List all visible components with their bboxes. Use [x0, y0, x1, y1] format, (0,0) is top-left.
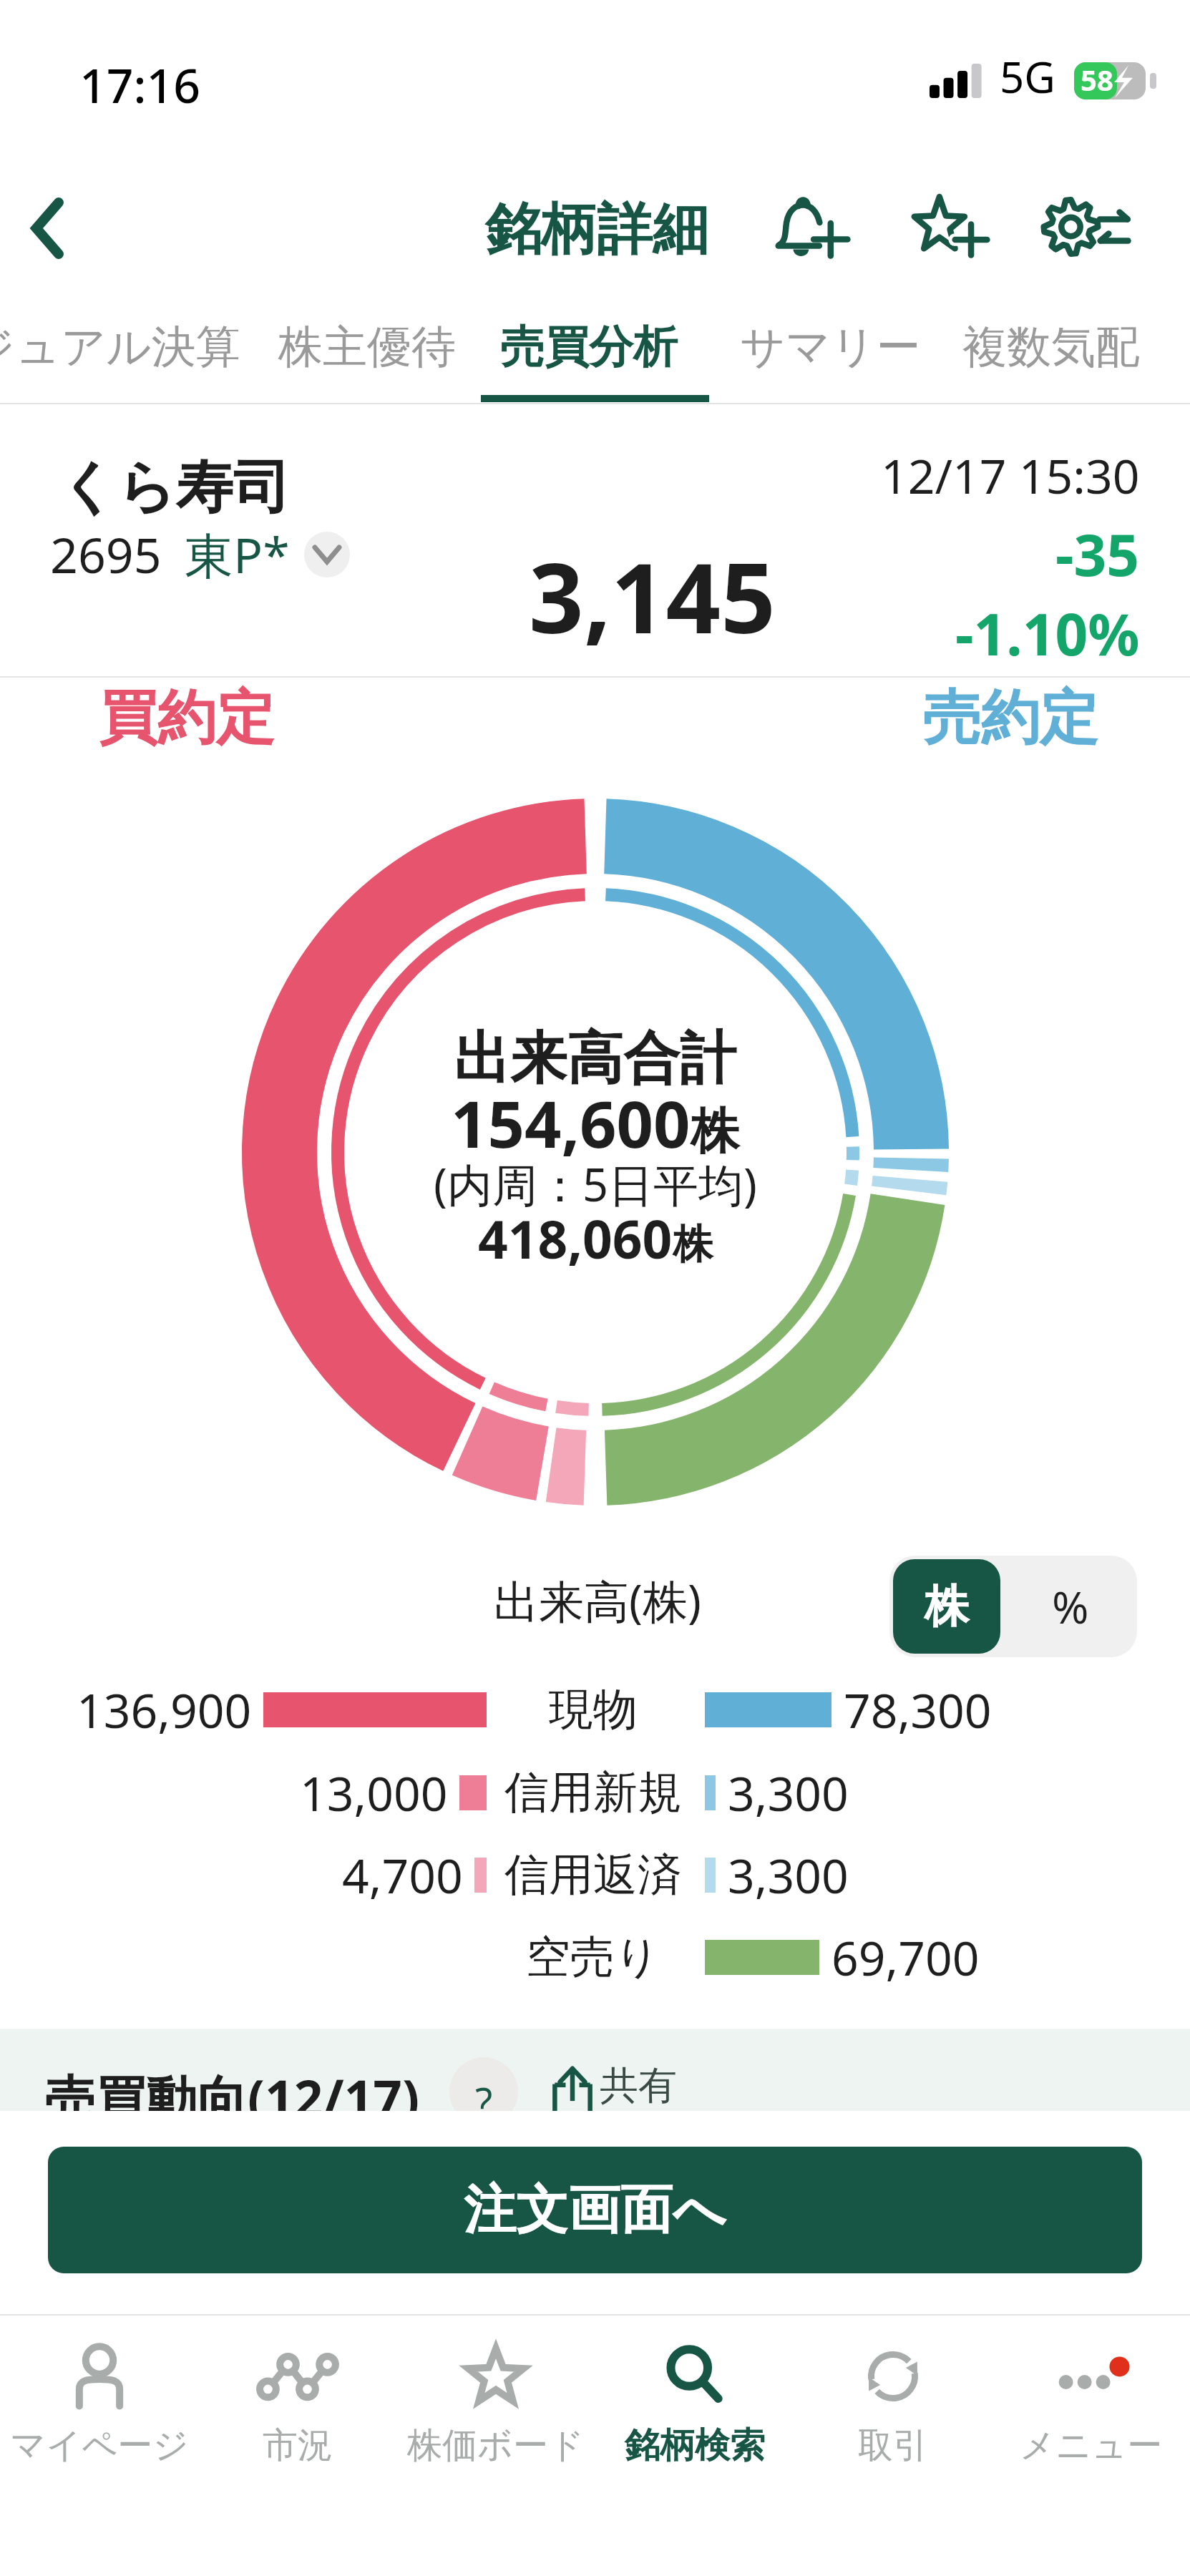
staticText: 東P* — [185, 521, 290, 587]
staticText: -1.10% — [955, 594, 1140, 672]
staticText: 銘柄詳細 — [485, 195, 708, 265]
staticText: 136,900 — [77, 1677, 252, 1742]
button[interactable]: 注文画面へ — [48, 2147, 1142, 2273]
staticText: 17:16 — [79, 52, 200, 117]
staticText: 信用返済 — [504, 1847, 682, 1903]
staticText: マイページ — [10, 2424, 189, 2468]
staticText: 5G — [1000, 47, 1055, 106]
staticText: 空売り — [526, 1929, 660, 1985]
button[interactable]: メニュー — [992, 2320, 1190, 2468]
button[interactable]: マイページ — [0, 2320, 198, 2468]
button[interactable]: 株 — [893, 1559, 1000, 1654]
staticText: 3,300 — [728, 1843, 849, 1907]
button[interactable]: 13,000 — [0, 1751, 1190, 1834]
button[interactable]: Show details — [304, 532, 350, 577]
staticText: 売約定 — [922, 681, 1098, 755]
staticText: ジュアル決算 — [0, 319, 240, 375]
staticText: 市況 — [263, 2424, 333, 2468]
button[interactable]: 複数気配 — [955, 312, 1147, 382]
button[interactable]: 空売り — [0, 1916, 1190, 1999]
staticText: 3,145 — [529, 531, 776, 662]
staticText: 株価ボード — [407, 2424, 585, 2468]
staticText: 154,600 — [451, 1079, 691, 1167]
button[interactable]: % — [1004, 1556, 1137, 1657]
button[interactable]: 株主優待 — [271, 312, 463, 382]
staticText: 3,300 — [728, 1760, 849, 1825]
staticText: 複数気配 — [962, 319, 1140, 375]
staticText: ? — [475, 2074, 493, 2126]
staticText: 株 — [691, 1101, 739, 1163]
button[interactable]: Share — [552, 2063, 677, 2112]
staticText: 出来高合計 — [454, 1023, 736, 1095]
button[interactable]: 売買分析 — [493, 312, 685, 382]
staticText: % — [1052, 1576, 1089, 1636]
staticText: 共有 — [600, 2062, 677, 2110]
staticText: 出来高(株) — [494, 1570, 701, 1631]
staticText: 12/17 15:30 — [881, 443, 1140, 507]
button[interactable]: 136,900 — [0, 1668, 1190, 1751]
staticText: 58 — [1081, 60, 1113, 97]
staticText: サマリー — [740, 319, 921, 375]
staticText: 注文画面へ — [464, 2177, 726, 2243]
staticText: 信用新規 — [504, 1765, 682, 1820]
button[interactable]: Back — [0, 177, 94, 280]
button[interactable]: 市況 — [198, 2320, 396, 2468]
button[interactable]: 銘柄検索 — [595, 2320, 794, 2468]
staticText: 取引 — [858, 2424, 928, 2468]
staticText: メニュー — [1020, 2424, 1163, 2468]
staticText: 4,700 — [342, 1843, 463, 1907]
button[interactable]: Help — [449, 2057, 518, 2126]
staticText: 売買動向(12/17) — [44, 2063, 420, 2132]
button[interactable]: 株価ボード — [396, 2320, 595, 2468]
staticText: -35 — [1055, 514, 1140, 592]
staticText: 13,000 — [300, 1760, 448, 1825]
button[interactable]: 取引 — [794, 2320, 992, 2468]
staticText: 2695 — [50, 521, 162, 587]
button[interactable]: サマリー — [733, 312, 928, 382]
staticText: くら寿司 — [59, 452, 291, 524]
button[interactable]: Settings — [1028, 172, 1142, 287]
staticText: 418,060 — [478, 1203, 673, 1274]
staticText: 現物 — [549, 1682, 638, 1737]
staticText: 買約定 — [99, 681, 275, 755]
staticText: 株主優待 — [278, 319, 456, 375]
staticText: 78,300 — [844, 1677, 992, 1742]
staticText: 株 — [925, 1579, 969, 1634]
button[interactable]: Add to watchlist — [894, 172, 1009, 287]
button[interactable]: Add price alert — [755, 172, 869, 287]
button[interactable]: 4,700 — [0, 1833, 1190, 1916]
staticText: 売買分析 — [500, 319, 678, 375]
button[interactable]: ジュアル決算 — [0, 312, 248, 382]
staticText: 69,700 — [831, 1925, 980, 1989]
staticText: (内周：5日平均) — [434, 1153, 757, 1215]
staticText: 銘柄検索 — [625, 2424, 765, 2468]
staticText: 株 — [673, 1219, 713, 1270]
